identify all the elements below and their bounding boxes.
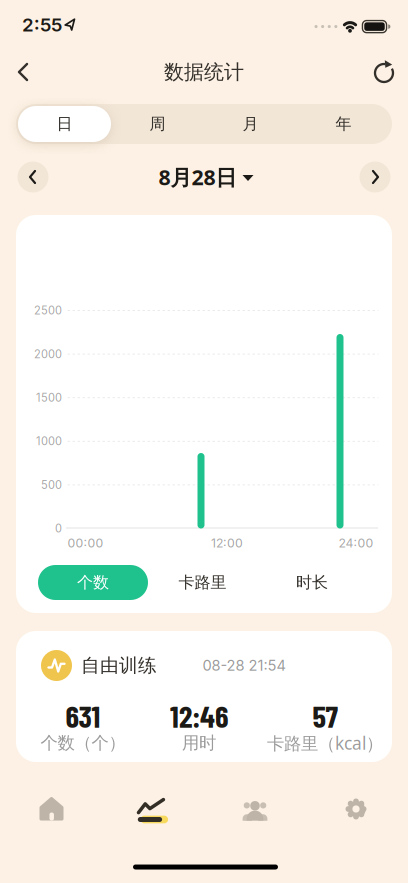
button[interactable]: 个数 [38,565,148,600]
button[interactable]: 年 [297,106,390,142]
button[interactable]: 周 [111,106,204,142]
button[interactable]: Settings [344,797,368,821]
staticText: 个数（个） [40,732,125,754]
staticText: 时长 [296,573,328,592]
button[interactable]: 卡路里 [147,565,257,600]
staticText: 年 [335,114,351,134]
staticText: 卡路里 [178,573,226,592]
staticText: 24:00 [338,536,373,550]
staticText: 月 [242,114,258,134]
staticText: 57 [312,697,337,734]
button[interactable]: Select date [158,163,253,191]
button[interactable]: Back [12,60,36,84]
staticText: 个数 [77,573,109,592]
button[interactable]: Refresh [371,58,399,86]
button[interactable]: Previous day [17,161,48,192]
staticText: 1000 [36,435,62,448]
button[interactable]: 日 [18,106,111,142]
button[interactable]: Home [36,794,66,824]
staticText: 2500 [34,304,62,317]
button[interactable]: 月 [204,106,297,142]
staticText: 12:46 [170,697,228,734]
staticText: 日 [56,114,72,134]
staticText: 500 [41,478,62,491]
staticText: 数据统计 [164,60,244,84]
staticText: 2000 [34,348,62,360]
button[interactable]: 自由训练 [16,631,392,762]
staticText: 卡路里（kcal） [267,731,383,754]
staticText: 8月28日 [158,163,236,191]
button[interactable]: Community [240,798,272,824]
staticText: 00:00 [67,536,103,550]
button[interactable]: Statistics [133,789,173,825]
staticText: 2:55 [22,14,62,36]
staticText: 0 [55,522,62,535]
staticText: 自由训练 [81,654,157,677]
staticText: 08-28 21:54 [202,657,285,674]
staticText: 631 [65,697,100,734]
button[interactable]: Next day [359,161,390,192]
staticText: 用时 [182,732,216,754]
button[interactable]: 时长 [257,565,367,600]
staticText: 周 [149,114,165,134]
staticText: 12:00 [211,536,243,550]
staticText: 1500 [36,391,62,404]
